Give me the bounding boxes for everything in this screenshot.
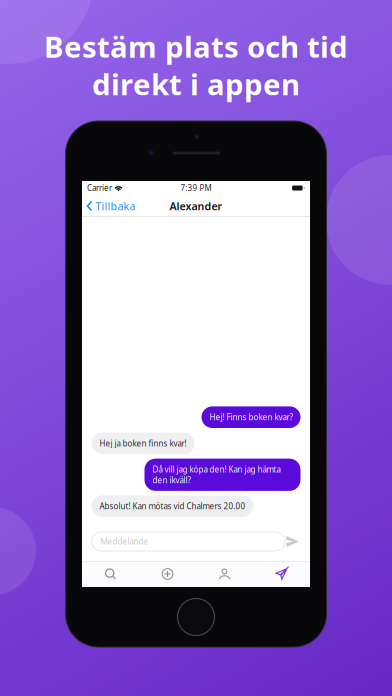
button[interactable]: Profile <box>196 561 253 587</box>
button[interactable]: Tillbaka <box>82 196 141 216</box>
staticText: 7:39 PM <box>180 183 211 193</box>
staticText: Hej ja boken finns kvar! <box>99 438 186 449</box>
staticText: Meddelande <box>100 536 148 547</box>
staticText: Tillbaka <box>95 199 135 213</box>
staticText: Hej! Finns boken kvar? <box>209 412 292 422</box>
staticText: Absolut! Kan mötas vid Chalmers 20.00 <box>99 501 245 511</box>
staticText: Carrier <box>87 183 112 193</box>
staticText: Då vill jag köpa den! Kan jag hämta den … <box>152 464 280 485</box>
staticText: Alexander <box>169 199 222 213</box>
button[interactable]: New listing <box>139 561 196 587</box>
staticText: direkt i appen <box>92 64 300 103</box>
staticText: Bestäm plats och tid <box>44 27 348 66</box>
button[interactable]: Messages <box>253 561 310 587</box>
button[interactable]: Send <box>285 532 300 551</box>
button[interactable]: Search <box>82 561 139 587</box>
